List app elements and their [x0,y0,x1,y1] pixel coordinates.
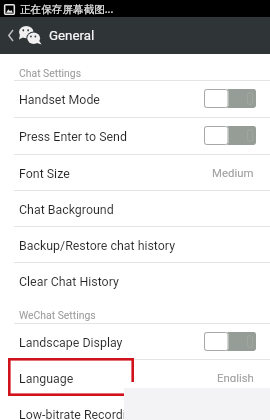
button[interactable]: Low-bitrate Recording [0,395,270,420]
button[interactable]: Clear Chat History [0,262,270,298]
staticText: English [217,371,254,384]
button[interactable]: Toggle [204,89,256,108]
staticText: Landscape Display [19,335,123,350]
button[interactable]: Backup/Restore chat history [0,226,270,262]
staticText: Press Enter to Send [19,129,127,144]
staticText: Low-bitrate Recording [19,407,140,420]
staticText: General [49,28,95,44]
staticText: Handset Mode [19,92,100,107]
button[interactable]: Toggle [204,332,256,351]
button[interactable]: Chat Background [0,190,270,226]
button[interactable]: Language [0,359,270,395]
button[interactable]: Handset Mode [0,80,270,116]
button[interactable]: Landscape Display [0,323,270,359]
staticText: Chat Background [19,202,114,217]
staticText: Language [19,371,74,386]
button[interactable]: Font Size [0,154,270,190]
staticText: Medium [212,166,254,179]
button[interactable]: Back [0,17,270,54]
staticText: Backup/Restore chat history [19,238,176,253]
staticText: Chat Settings [19,67,82,79]
staticText: 正在保存屏幕截图... [20,2,114,16]
button[interactable]: Press Enter to Send [0,117,270,153]
staticText: WeChat Settings [19,309,96,321]
staticText: Font Size [19,166,70,181]
staticText: Clear Chat History [19,274,119,289]
button[interactable]: Toggle [204,126,256,145]
